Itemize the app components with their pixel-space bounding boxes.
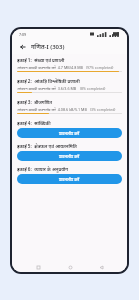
button[interactable]: डाउनलोड करें <box>17 128 122 138</box>
button[interactable]: इकाई 4: सांख्यिकी <box>17 120 122 143</box>
staticText: इकाई 5: क्षेत्रफल एवं आयतनमिति <box>17 143 77 149</box>
button[interactable]: Back <box>17 41 28 52</box>
staticText: इकाई 6: व्यापार के अनुप्रयोग <box>17 166 69 172</box>
staticText: अध्ययन सामग्री डाउनलोड करें 3.6/3.6 MB <box>17 86 77 91</box>
staticText: इकाई 2: आंकड़ि विश्लेषिकी प्रणाली <box>17 78 80 84</box>
staticText: अध्ययन सामग्री डाउनलोड करें 4.08.6 kB/5.… <box>17 107 87 112</box>
button[interactable]: डाउनलोड करें <box>17 174 122 184</box>
button[interactable]: Back <box>96 262 106 272</box>
button[interactable]: इकाई 3: बीजगणित <box>17 99 122 120</box>
button[interactable]: Home <box>65 262 75 272</box>
button[interactable]: इकाई 5: क्षेत्रफल एवं आयतनमिति <box>17 143 122 166</box>
button[interactable]: इकाई 1: संख्या एवं प्रणाली <box>17 57 122 78</box>
staticText: इकाई 3: बीजगणित <box>17 99 53 105</box>
staticText: इकाई 1: संख्या एवं प्रणाली <box>17 57 65 63</box>
button[interactable]: Recents <box>33 262 43 272</box>
staticText: (3% completed) <box>90 107 116 112</box>
button[interactable]: इकाई 2: आंकड़ि विश्लेषिकी प्रणाली <box>17 78 122 99</box>
staticText: 7:09 <box>19 32 27 37</box>
staticText: (8% completed) <box>80 86 106 91</box>
staticText: इकाई 4: सांख्यिकी <box>17 120 51 126</box>
staticText: डाउनलोड करें <box>59 154 80 159</box>
staticText: डाउनलोड करें <box>59 177 80 182</box>
button[interactable]: डाउनलोड करें <box>17 151 122 161</box>
staticText: अध्ययन सामग्री डाउनलोड करें 4.7 MB/4.8 M… <box>17 65 83 70</box>
staticText: (97% completed) <box>86 65 114 70</box>
button[interactable]: इकाई 6: व्यापार के अनुप्रयोग <box>17 166 122 189</box>
staticText: गणित-I (303) <box>31 43 65 51</box>
staticText: डाउनलोड करें <box>59 131 80 136</box>
